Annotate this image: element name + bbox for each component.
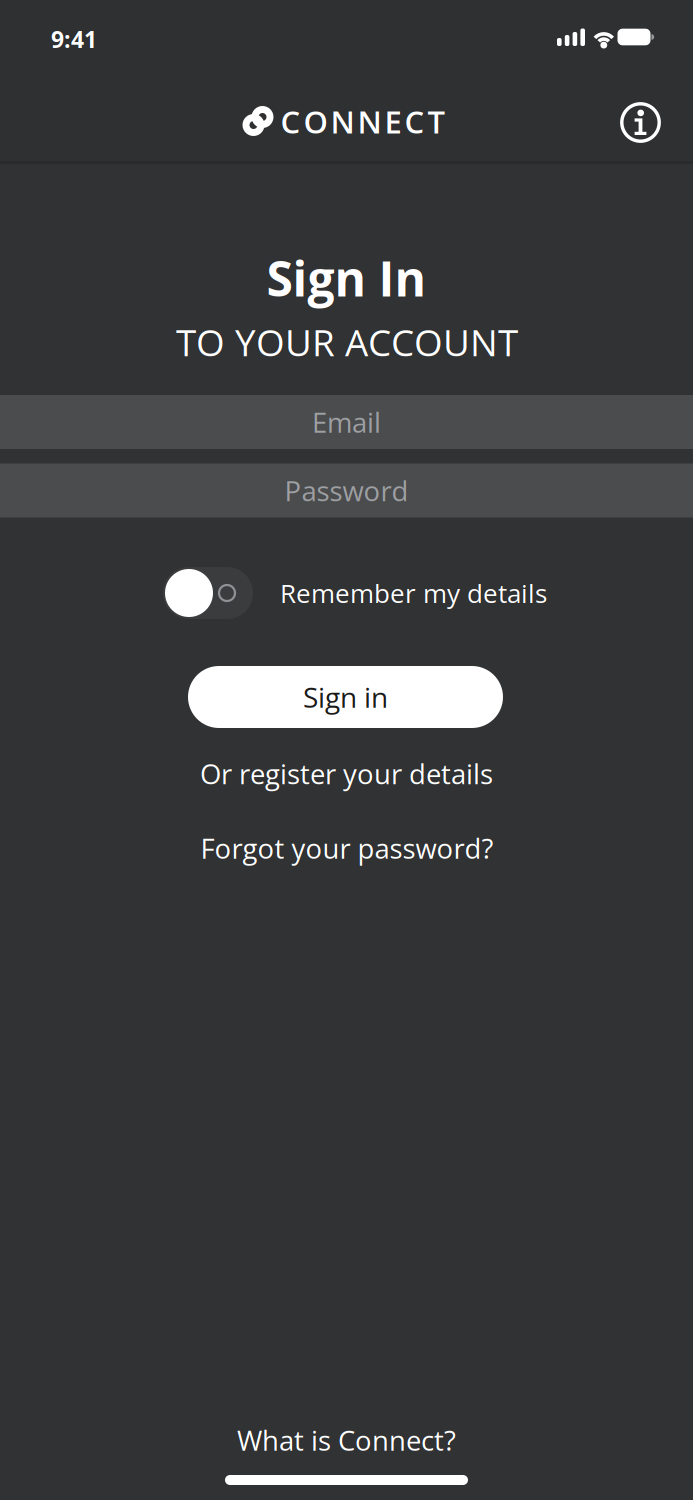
staticText: Or register your details [200, 755, 493, 792]
button[interactable]: Email [0, 395, 693, 449]
staticText: Password [284, 472, 408, 509]
staticText: TO YOUR ACCOUNT [176, 317, 518, 367]
staticText: 9:41 [51, 23, 97, 55]
button[interactable]: Or register your details [200, 755, 493, 792]
staticText: Sign In [266, 245, 426, 311]
button[interactable]: Forgot your password? [200, 829, 493, 867]
staticText: Email [312, 403, 381, 441]
staticText: Sign in [303, 678, 388, 716]
button[interactable]: What is Connect? [237, 1421, 456, 1459]
button[interactable] [620, 102, 661, 143]
button[interactable]: Sign in [188, 666, 503, 728]
staticText: CONNECT [280, 100, 445, 143]
button[interactable]: Remember my details [163, 567, 547, 619]
staticText: Remember my details [280, 575, 547, 611]
button[interactable]: CONNECT [242, 100, 445, 143]
staticText: Forgot your password? [200, 829, 493, 867]
staticText: What is Connect? [237, 1421, 456, 1459]
button[interactable]: Password [0, 463, 693, 517]
